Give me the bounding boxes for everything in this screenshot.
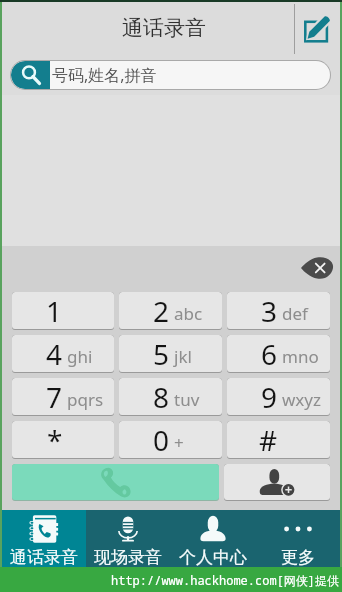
button[interactable]: 7 bbox=[12, 378, 114, 415]
staticText: 3 bbox=[261, 292, 278, 329]
staticText: 4 bbox=[46, 335, 63, 372]
staticText: 1 bbox=[46, 292, 63, 329]
button[interactable]: 通话录音 bbox=[2, 510, 86, 567]
button[interactable]: 2 bbox=[119, 292, 222, 329]
staticText: 通话录音 bbox=[122, 15, 206, 41]
button[interactable]: 个人中心 bbox=[170, 510, 255, 567]
button[interactable]: 8 bbox=[119, 378, 222, 415]
button[interactable]: 号码,姓名,拼音 bbox=[11, 61, 330, 89]
staticText: pqrs bbox=[67, 388, 104, 411]
staticText: 更多 bbox=[281, 547, 315, 567]
button[interactable]: 0 bbox=[119, 421, 222, 458]
staticText: 通话录音 bbox=[10, 547, 78, 567]
staticText: def bbox=[282, 302, 308, 325]
staticText: 6 bbox=[261, 335, 278, 372]
staticText: abc bbox=[174, 302, 203, 325]
staticText: 号码,姓名,拼音 bbox=[52, 64, 157, 86]
button[interactable]: Compose bbox=[294, 2, 340, 55]
button[interactable]: 6 bbox=[227, 335, 330, 372]
staticText: 8 bbox=[153, 378, 170, 415]
button[interactable]: 4 bbox=[12, 335, 114, 372]
button[interactable]: Delete bbox=[301, 257, 333, 279]
button[interactable]: Add contact bbox=[224, 464, 330, 500]
button[interactable]: Call bbox=[12, 464, 219, 500]
staticText: 0 bbox=[153, 421, 170, 458]
staticText: mno bbox=[282, 345, 319, 368]
staticText: wxyz bbox=[282, 388, 322, 411]
button[interactable]: 3 bbox=[227, 292, 330, 329]
staticText: http://www.hackhome.com[网侠]提供 bbox=[111, 572, 340, 588]
staticText: 现场录音 bbox=[94, 547, 162, 567]
button[interactable]: 5 bbox=[119, 335, 222, 372]
button[interactable]: * bbox=[12, 421, 114, 458]
staticText: ghi bbox=[67, 345, 93, 368]
staticText: # bbox=[259, 421, 278, 458]
staticText: * bbox=[47, 421, 63, 458]
staticText: + bbox=[174, 431, 184, 454]
staticText: 个人中心 bbox=[179, 547, 247, 567]
button[interactable]: 现场录音 bbox=[86, 510, 170, 567]
staticText: 9 bbox=[261, 378, 278, 415]
button[interactable]: 1 bbox=[12, 292, 114, 329]
button[interactable]: # bbox=[227, 421, 330, 458]
staticText: tuv bbox=[174, 388, 200, 411]
button[interactable]: 9 bbox=[227, 378, 330, 415]
staticText: 7 bbox=[46, 378, 63, 415]
staticText: 5 bbox=[153, 335, 170, 372]
staticText: 2 bbox=[153, 292, 170, 329]
button[interactable]: 更多 bbox=[255, 510, 340, 567]
staticText: jkl bbox=[174, 345, 192, 368]
